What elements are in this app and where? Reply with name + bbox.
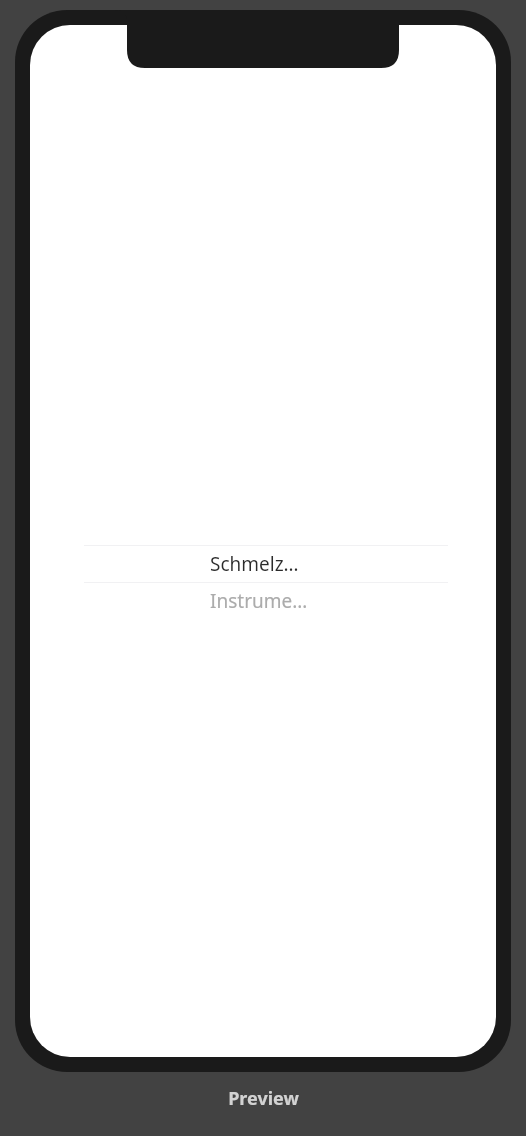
staticText: Schmelz… bbox=[210, 551, 299, 577]
button[interactable]: Schmelz… bbox=[30, 546, 496, 582]
button[interactable]: Instrume… bbox=[30, 583, 496, 619]
staticText: Preview bbox=[228, 1086, 299, 1111]
staticText: Instrume… bbox=[210, 588, 308, 614]
